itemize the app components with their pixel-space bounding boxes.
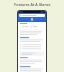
button[interactable]: Features At A Glance bbox=[0, 0, 64, 9]
staticText: Features At A Glance bbox=[14, 2, 51, 7]
button[interactable]: Search bbox=[19, 14, 45, 17]
